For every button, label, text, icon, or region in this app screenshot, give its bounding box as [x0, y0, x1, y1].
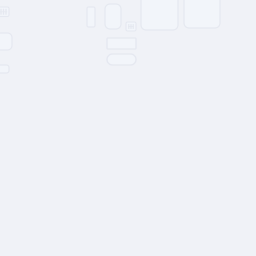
button[interactable]: Row	[0, 65, 9, 73]
button[interactable]: Tile	[105, 4, 121, 29]
button[interactable]: Card	[0, 33, 12, 50]
button[interactable]: Keypad	[126, 22, 136, 31]
button[interactable]: Keypad	[0, 7, 9, 16]
button[interactable]: Field	[107, 38, 136, 49]
button[interactable]: Pill button	[107, 54, 136, 65]
button[interactable]: Tile	[87, 7, 95, 27]
